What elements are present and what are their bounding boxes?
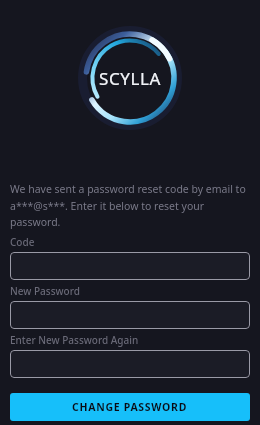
staticText: New Password — [10, 284, 80, 298]
button[interactable]: Confirm new password input — [10, 350, 250, 378]
button[interactable]: New password input — [10, 301, 250, 329]
button[interactable]: Code input — [10, 252, 250, 280]
staticText: SCYLLA — [99, 67, 161, 90]
staticText: We have sent a password reset code by em… — [10, 182, 250, 229]
staticText: Code — [10, 235, 35, 249]
button[interactable]: CHANGE PASSWORD — [10, 393, 250, 421]
staticText: Enter New Password Again — [10, 333, 139, 347]
staticText: CHANGE PASSWORD — [72, 400, 188, 414]
